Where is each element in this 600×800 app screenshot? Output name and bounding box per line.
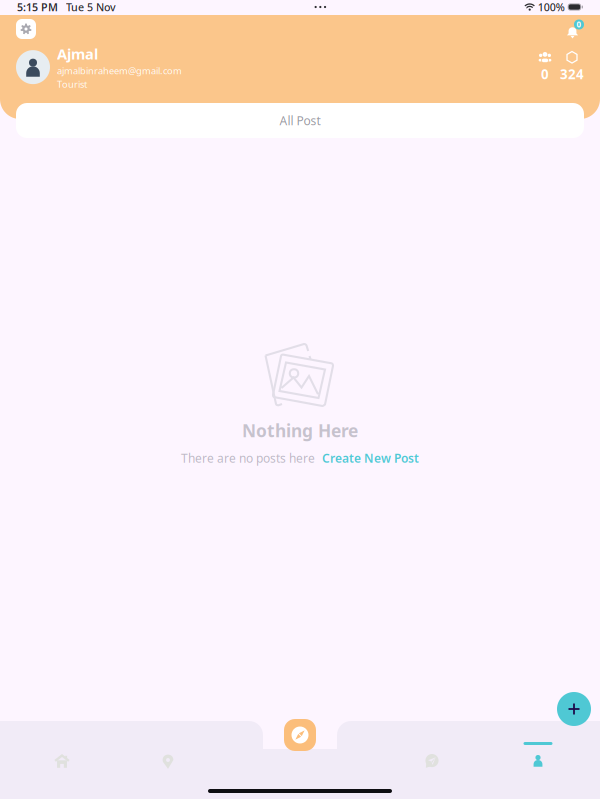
button[interactable]: Profile bbox=[523, 735, 552, 783]
staticText: 0 bbox=[541, 65, 549, 83]
button[interactable]: Create New Post bbox=[322, 450, 419, 466]
button[interactable]: Places bbox=[153, 735, 182, 783]
button[interactable]: Notifications bbox=[565, 19, 584, 38]
staticText: Tue 5 Nov bbox=[66, 0, 116, 14]
staticText: There are no posts here bbox=[181, 450, 315, 466]
staticText: ajmalbinraheem@gmail.com bbox=[57, 64, 182, 77]
button[interactable]: Create post bbox=[557, 692, 591, 726]
button[interactable]: Messages bbox=[417, 735, 446, 783]
staticText: Tourist bbox=[57, 78, 87, 90]
staticText: All Post bbox=[279, 112, 320, 128]
staticText: Ajmal bbox=[57, 44, 98, 63]
staticText: Create New Post bbox=[322, 450, 419, 466]
staticText: 324 bbox=[560, 65, 584, 83]
staticText: Nothing Here bbox=[242, 419, 358, 442]
button[interactable]: Settings bbox=[16, 19, 36, 39]
button[interactable]: Explore bbox=[284, 719, 316, 751]
staticText: 0 bbox=[576, 19, 581, 30]
staticText: 100% bbox=[538, 0, 565, 14]
button[interactable]: Home bbox=[47, 735, 76, 783]
button[interactable]: All Post bbox=[16, 103, 584, 138]
staticText: 5:15 PM bbox=[17, 0, 58, 14]
